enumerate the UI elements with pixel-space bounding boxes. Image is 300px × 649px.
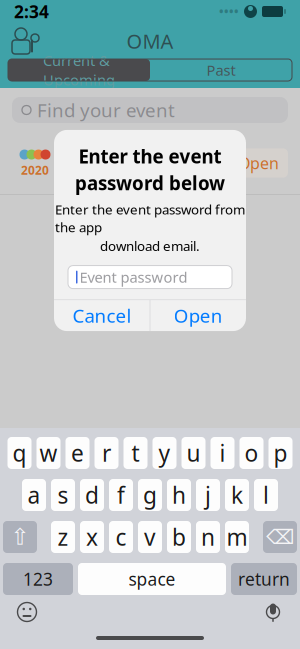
staticText: y (158, 438, 170, 468)
button[interactable]: n (196, 521, 220, 553)
staticText: z (57, 522, 68, 552)
staticText: l (263, 480, 269, 510)
staticText: Find your event (37, 98, 175, 122)
button[interactable]: Account (10, 24, 44, 58)
button[interactable]: c (109, 521, 133, 553)
staticText: Past (206, 60, 235, 80)
button[interactable]: u (181, 437, 205, 469)
button[interactable]: t (123, 437, 147, 469)
staticText: space (128, 567, 175, 590)
staticText: Enter the event (78, 144, 221, 169)
button[interactable]: w (36, 437, 60, 469)
button[interactable]: e (65, 437, 89, 469)
staticText: o (244, 438, 258, 468)
button[interactable]: g (138, 479, 162, 511)
button[interactable]: 2020 (0, 132, 300, 194)
staticText: download email. (100, 237, 200, 255)
button[interactable]: b (167, 521, 191, 553)
staticText: q (12, 438, 26, 468)
button[interactable]: 123 (3, 563, 73, 595)
button[interactable]: i (210, 437, 234, 469)
staticText: s (57, 480, 68, 510)
staticText: b (172, 522, 186, 552)
staticText: Current & Upcoming (43, 50, 115, 89)
button[interactable]: Emoji keyboard (10, 597, 44, 627)
staticText: i (219, 438, 225, 468)
button[interactable]: d (80, 479, 104, 511)
staticText: ⇧ (10, 524, 29, 550)
staticText: Cancel (72, 303, 131, 328)
staticText: w (39, 438, 57, 468)
button[interactable]: return (231, 563, 297, 595)
staticText: h (172, 480, 186, 510)
button[interactable]: m (225, 521, 249, 553)
staticText: Open (174, 303, 223, 328)
staticText: v (144, 522, 156, 552)
staticText: f (117, 480, 125, 510)
staticText: n (201, 522, 215, 552)
button[interactable]: Past (150, 59, 292, 81)
staticText: c (115, 522, 126, 552)
staticText: m (226, 522, 247, 552)
button[interactable]: k (225, 479, 249, 511)
button[interactable]: j (196, 479, 220, 511)
staticText: 123 (23, 567, 53, 590)
button[interactable]: o (239, 437, 263, 469)
button[interactable]: q (7, 437, 31, 469)
staticText: d (85, 480, 99, 510)
staticText: Open (238, 152, 279, 174)
staticText: g (143, 480, 157, 510)
button[interactable]: x (80, 521, 104, 553)
button[interactable]: Current & Upcoming (8, 59, 150, 81)
staticText: p (273, 438, 287, 468)
staticText: t (131, 438, 139, 468)
button[interactable]: h (167, 479, 191, 511)
staticText: 2:34 (14, 0, 49, 23)
button[interactable]: v (138, 521, 162, 553)
staticText: x (86, 522, 98, 552)
button[interactable]: Open (150, 300, 246, 331)
staticText: ⌫ (266, 526, 294, 548)
staticText: a (27, 480, 40, 510)
staticText: e (71, 438, 84, 468)
staticText: Enter the event password from the app (55, 200, 245, 236)
button[interactable]: y (152, 437, 176, 469)
staticText: password below (75, 171, 225, 195)
staticText: •••• (219, 3, 239, 19)
button[interactable]: r (94, 437, 118, 469)
button[interactable]: Shift (3, 521, 37, 553)
button[interactable]: Dictation (256, 597, 290, 627)
staticText: r (102, 438, 111, 468)
staticText: 2020 (21, 162, 49, 178)
button[interactable]: space (78, 563, 226, 595)
button[interactable]: s (51, 479, 75, 511)
button[interactable]: z (51, 521, 75, 553)
button[interactable]: a (22, 479, 46, 511)
staticText: Event password (79, 267, 187, 287)
button[interactable]: p (268, 437, 292, 469)
button[interactable]: Cancel (54, 300, 150, 331)
staticText: OMA (126, 28, 173, 54)
staticText: u (186, 438, 200, 468)
staticText: return (238, 567, 290, 590)
button[interactable]: f (109, 479, 133, 511)
staticText: j (205, 480, 211, 510)
staticText: k (231, 480, 243, 510)
button[interactable]: Delete (263, 521, 297, 553)
button[interactable]: l (254, 479, 278, 511)
